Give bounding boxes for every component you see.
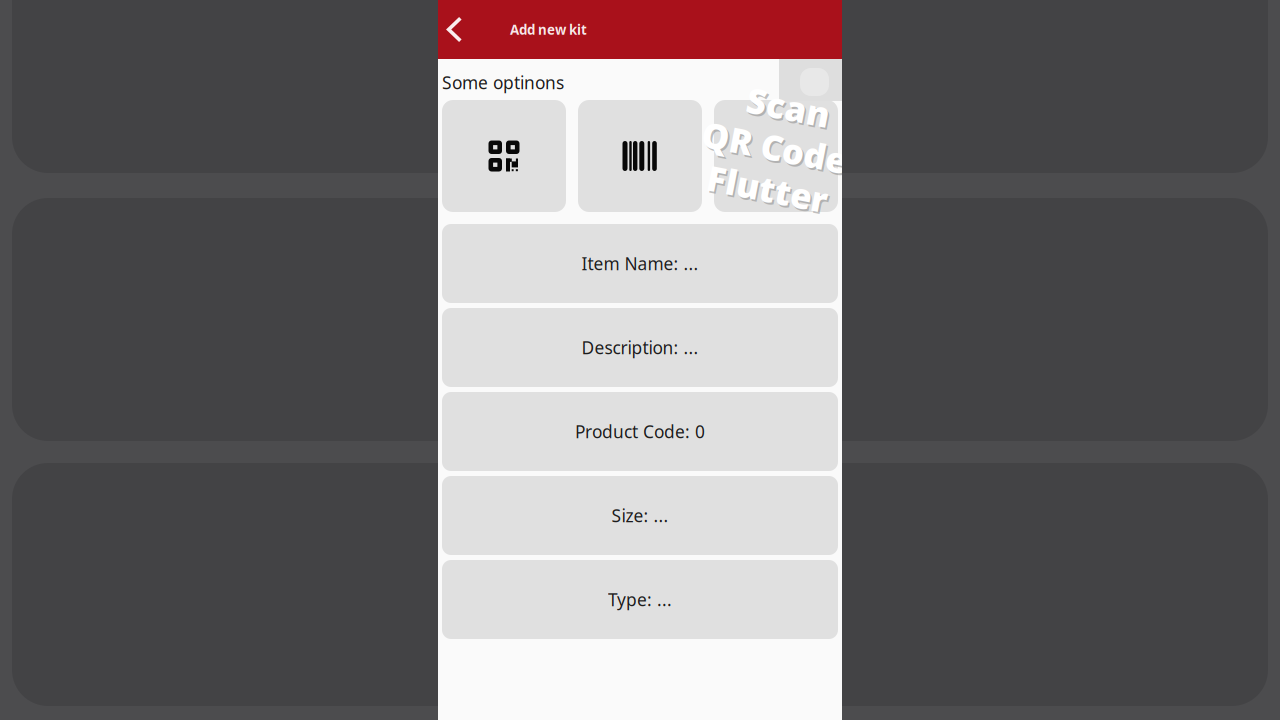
- staticText: Some optinons: [442, 71, 564, 94]
- staticText: Type: ...: [608, 588, 672, 611]
- staticText: Description: ...: [581, 336, 698, 359]
- staticText: Item Name: ...: [581, 252, 698, 275]
- staticText: Size: ...: [611, 504, 668, 527]
- button[interactable]: Item Name: ...: [442, 224, 838, 303]
- button[interactable]: Size: ...: [442, 476, 838, 555]
- button[interactable]: Back: [443, 0, 466, 59]
- staticText: QR Code: [701, 124, 848, 170]
- button[interactable]: Description: ...: [442, 308, 838, 387]
- staticText: Flutter: [714, 166, 836, 212]
- button[interactable]: Scan QR code: [442, 100, 566, 212]
- button[interactable]: Scan barcode: [578, 100, 702, 212]
- staticText: Add new kit: [510, 21, 587, 38]
- button[interactable]: Scan with camera: [714, 100, 838, 212]
- staticText: Scan: [738, 82, 822, 128]
- button[interactable]: Type: ...: [442, 560, 838, 639]
- staticText: Product Code: 0: [575, 420, 705, 443]
- button[interactable]: Product Code: 0: [442, 392, 838, 471]
